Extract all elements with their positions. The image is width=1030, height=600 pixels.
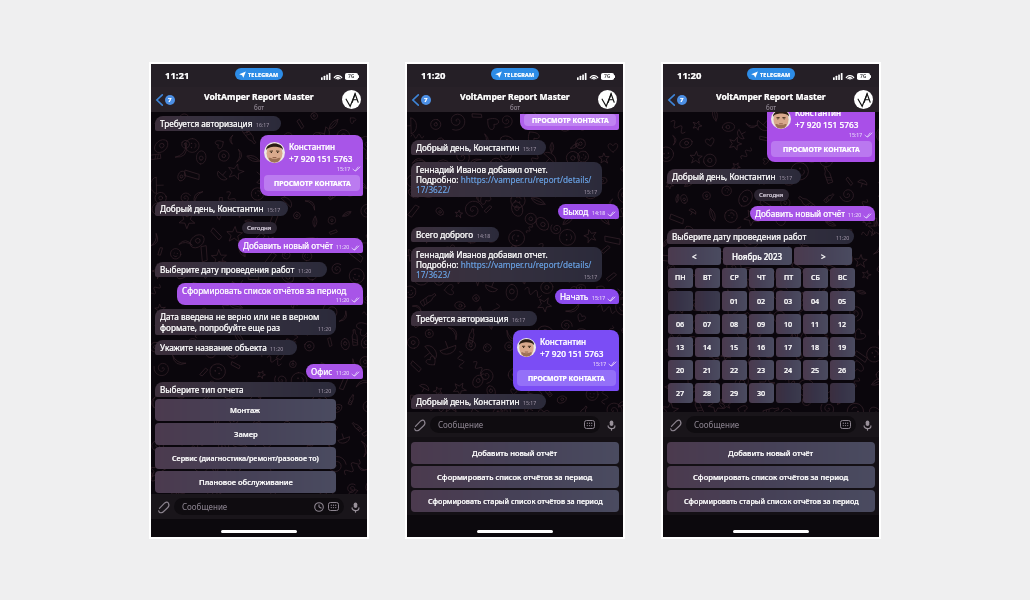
button[interactable]: Record voice message: [860, 418, 874, 432]
button[interactable]: ПТ: [776, 268, 801, 288]
button[interactable]: [830, 383, 855, 403]
button[interactable]: ПРОСМОТР КОНТАКТА: [264, 175, 360, 191]
button[interactable]: 03: [776, 291, 801, 311]
button[interactable]: 29: [722, 383, 747, 403]
button[interactable]: Укажите название объекта: [155, 340, 297, 355]
button[interactable]: Добавить новый отчёт: [238, 238, 363, 253]
button[interactable]: ЧТ: [749, 268, 774, 288]
button[interactable]: Требуется авторизация: [411, 311, 537, 326]
button[interactable]: 08: [722, 314, 747, 334]
button[interactable]: 25: [803, 360, 828, 380]
button[interactable]: Сформировать список отчётов за период: [411, 466, 619, 488]
button[interactable]: 21: [695, 360, 720, 380]
button[interactable]: ВТ: [695, 268, 720, 288]
button[interactable]: Attach file: [668, 417, 683, 432]
button[interactable]: 20: [668, 360, 693, 380]
button[interactable]: Геннадий Иванов добавил отчет. Подробно:…: [411, 247, 602, 282]
button[interactable]: Profile: [854, 90, 873, 109]
button[interactable]: 17: [776, 337, 801, 357]
button[interactable]: 22: [722, 360, 747, 380]
button[interactable]: Attach file: [412, 417, 427, 432]
staticText: 15:17: [523, 145, 537, 152]
button[interactable]: 18: [803, 337, 828, 357]
button[interactable]: СР: [722, 268, 747, 288]
button[interactable]: Выход: [558, 204, 619, 219]
button[interactable]: Константин: [260, 135, 363, 196]
button[interactable]: 26: [830, 360, 855, 380]
button[interactable]: Back: [151, 90, 179, 110]
button[interactable]: <: [668, 247, 721, 265]
button[interactable]: ПРОСМОТР КОНТАКТА: [520, 114, 619, 130]
button[interactable]: Плановое обслуживание: [155, 471, 336, 493]
button[interactable]: Сформировать список отчётов за период: [667, 466, 875, 488]
button[interactable]: 04: [803, 291, 828, 311]
staticText: ВС: [838, 273, 848, 283]
button[interactable]: Всего доброго: [411, 227, 499, 242]
button[interactable]: ПН: [668, 268, 693, 288]
button[interactable]: Attach file: [156, 499, 171, 514]
button[interactable]: Добавить новый отчёт: [667, 442, 875, 464]
button[interactable]: Сформировать старый список отчётов за пе…: [667, 490, 875, 512]
button[interactable]: Монтаж: [155, 399, 336, 421]
button[interactable]: [668, 291, 693, 311]
button[interactable]: 11: [803, 314, 828, 334]
button[interactable]: Profile: [342, 90, 361, 109]
button[interactable]: ПРОСМОТР КОНТАКТА: [771, 141, 872, 157]
button[interactable]: [776, 383, 801, 403]
button[interactable]: Сообщение: [430, 416, 600, 433]
button[interactable]: Добрый день, Константин: [155, 201, 288, 216]
button[interactable]: Замер: [155, 423, 336, 445]
button[interactable]: Profile: [598, 90, 617, 109]
staticText: 11:20: [318, 325, 332, 332]
button[interactable]: Константин: [513, 330, 619, 391]
button[interactable]: Добавить новый отчёт: [411, 442, 619, 464]
button[interactable]: Back: [407, 90, 435, 110]
button[interactable]: Офис: [306, 364, 363, 379]
button[interactable]: СБ: [803, 268, 828, 288]
button[interactable]: 06: [668, 314, 693, 334]
button[interactable]: Дата введена не верно или не в верном: [155, 309, 336, 335]
button[interactable]: 12: [830, 314, 855, 334]
button[interactable]: 01: [722, 291, 747, 311]
button[interactable]: 28: [695, 383, 720, 403]
button[interactable]: 07: [695, 314, 720, 334]
button[interactable]: Добрый день, Константин: [411, 394, 546, 409]
button[interactable]: Ноябрь 2023: [723, 247, 792, 265]
button[interactable]: Геннадий Иванов добавил отчет. Подробно:…: [411, 162, 602, 197]
button[interactable]: Record voice message: [604, 418, 618, 432]
button[interactable]: 30: [749, 383, 774, 403]
button[interactable]: Требуется авторизация: [155, 116, 281, 131]
button[interactable]: Record voice message: [348, 500, 362, 514]
button[interactable]: Сформировать старый список отчётов за пе…: [411, 490, 619, 512]
button[interactable]: 24: [776, 360, 801, 380]
button[interactable]: 14: [695, 337, 720, 357]
button[interactable]: ВС: [830, 268, 855, 288]
button[interactable]: 27: [668, 383, 693, 403]
button[interactable]: 23: [749, 360, 774, 380]
button[interactable]: 19: [830, 337, 855, 357]
button[interactable]: Сообщение: [686, 416, 856, 433]
button[interactable]: 13: [668, 337, 693, 357]
button[interactable]: 10: [776, 314, 801, 334]
button[interactable]: Выберите дату проведения работ: [155, 262, 327, 277]
button[interactable]: Сервис (диагностика/ремонт/разовое то): [155, 447, 336, 469]
button[interactable]: Добрый день, Константин: [411, 140, 546, 155]
button[interactable]: Добрый день, Константин: [667, 169, 801, 184]
button[interactable]: Сформировать список отчётов за период: [177, 283, 363, 305]
button[interactable]: 15: [722, 337, 747, 357]
button[interactable]: Выберите тип отчета: [155, 382, 336, 397]
button[interactable]: [695, 291, 720, 311]
button[interactable]: Сообщение: [174, 498, 344, 515]
button[interactable]: Константин: [767, 112, 875, 162]
button[interactable]: 05: [830, 291, 855, 311]
button[interactable]: Добавить новый отчёт: [750, 206, 875, 221]
button[interactable]: Back: [663, 90, 691, 110]
button[interactable]: ПРОСМОТР КОНТАКТА: [517, 370, 616, 386]
button[interactable]: 02: [749, 291, 774, 311]
button[interactable]: Начать: [555, 289, 619, 304]
button[interactable]: >: [794, 247, 852, 265]
button[interactable]: 09: [749, 314, 774, 334]
button[interactable]: [803, 383, 828, 403]
button[interactable]: 16: [749, 337, 774, 357]
button[interactable]: Выберите дату проведения работ: [667, 229, 854, 244]
